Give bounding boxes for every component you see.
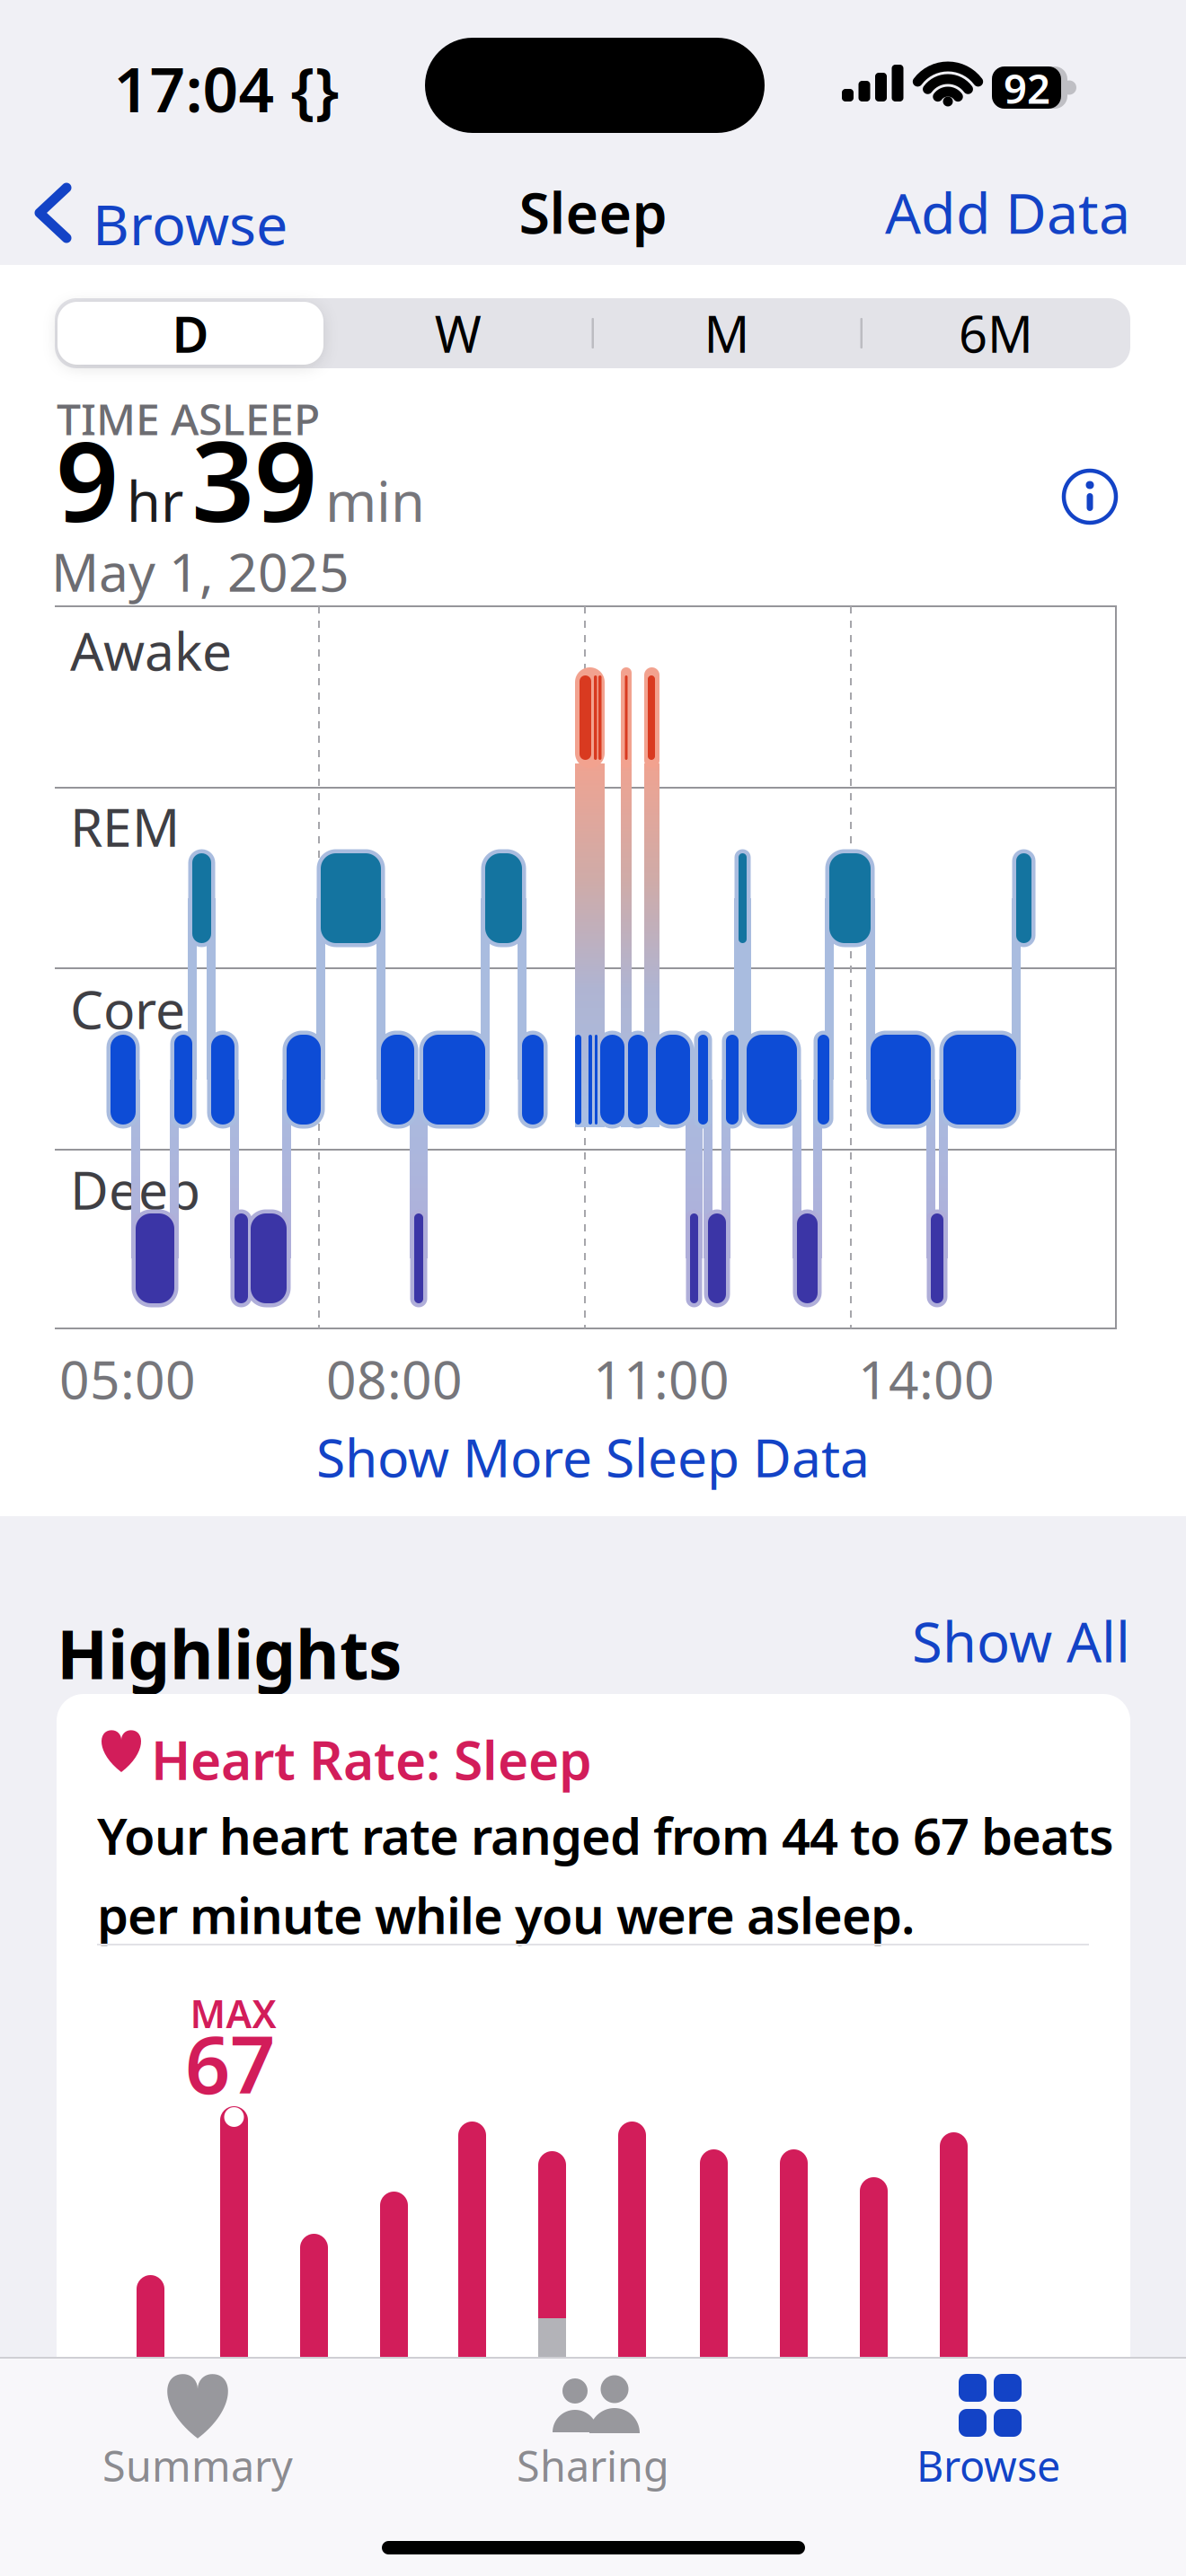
button[interactable]: Browse: [27, 158, 296, 268]
button[interactable]: Show More Sleep Data: [316, 1422, 870, 1492]
staticText: Show All: [912, 1604, 1130, 1678]
staticText: REM: [70, 791, 180, 861]
staticText: 39: [191, 406, 317, 552]
staticText: 11:00: [593, 1344, 730, 1414]
staticText: Add Data: [885, 175, 1130, 249]
staticText: 14:00: [858, 1344, 995, 1414]
button[interactable]: W: [324, 298, 592, 368]
staticText: Awake: [70, 615, 232, 685]
staticText: 92: [1004, 61, 1050, 115]
staticText: hr: [127, 464, 183, 537]
button[interactable]: M: [593, 298, 861, 368]
staticText: 17:04 {}: [114, 47, 339, 129]
staticText: 05:00: [59, 1344, 196, 1414]
staticText: Summary: [102, 2438, 293, 2493]
button[interactable]: Heart Rate: Sleep: [57, 1694, 1130, 2576]
staticText: Browse: [93, 186, 288, 261]
staticText: Browse: [916, 2438, 1060, 2493]
staticText: May 1, 2025: [51, 536, 350, 606]
staticText: M: [704, 300, 750, 367]
staticText: 9: [56, 406, 119, 552]
button[interactable]: Add Data: [843, 175, 1130, 249]
staticText: Heart Rate: Sleep: [151, 1725, 592, 1794]
button[interactable]: [1064, 471, 1116, 523]
staticText: 67: [185, 2011, 275, 2116]
button[interactable]: D: [56, 298, 325, 368]
staticText: Sharing: [517, 2438, 669, 2493]
staticText: 6M: [959, 300, 1033, 367]
button[interactable]: Sharing: [440, 2357, 746, 2519]
button[interactable]: Show All: [861, 1604, 1130, 1678]
button[interactable]: Summary: [45, 2357, 350, 2519]
staticText: D: [172, 300, 209, 367]
staticText: MAX: [190, 1988, 276, 2039]
staticText: Your heart rate ranged from 44 to 67 bea…: [97, 1802, 1114, 1948]
staticText: Deep: [70, 1154, 200, 1224]
staticText: Core: [70, 974, 185, 1044]
staticText: Sleep: [519, 175, 667, 249]
staticText: W: [435, 300, 481, 367]
staticText: Show More Sleep Data: [316, 1422, 870, 1492]
staticText: min: [325, 464, 425, 537]
button[interactable]: Browse: [836, 2357, 1141, 2519]
staticText: TIME ASLEEP: [57, 390, 320, 447]
staticText: 08:00: [326, 1344, 463, 1414]
button[interactable]: 6M: [862, 298, 1130, 368]
staticText: Highlights: [57, 1609, 402, 1698]
